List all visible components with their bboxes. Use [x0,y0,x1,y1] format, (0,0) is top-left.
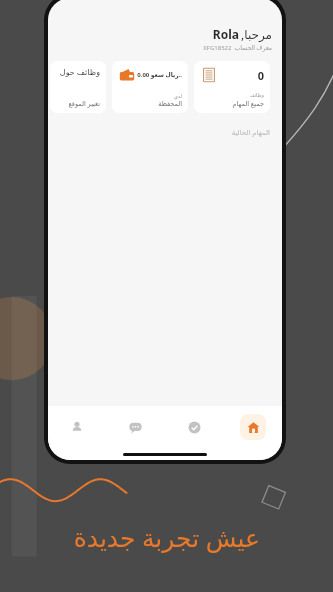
staticText: عيش تجربة جديدة [73,520,260,554]
button[interactable]: Messages [106,414,164,440]
button[interactable]: 0 [194,61,270,113]
button[interactable]: 0.00 ريال سعو.. [112,61,188,113]
staticText: 0 [257,68,264,83]
staticText: ,مرحبا [241,26,272,42]
staticText: وظائف حول [59,66,100,77]
button[interactable]: وظائف حول [50,61,106,113]
staticText: تغيير الموقع [68,99,100,108]
staticText: المحفظة [158,100,182,108]
button[interactable]: Tasks [164,414,223,440]
staticText: XFG18522 معرف الحساب [203,44,272,52]
staticText: لدي [173,93,182,99]
staticText: 0.00 ريال سعو.. [137,71,182,79]
staticText: وظائف [249,92,264,98]
staticText: Rola [212,26,239,42]
staticText: المهام الحالية [231,128,270,138]
button[interactable]: Profile [48,414,106,440]
button[interactable]: Home [223,414,282,440]
staticText: جميع المهام [232,99,264,108]
